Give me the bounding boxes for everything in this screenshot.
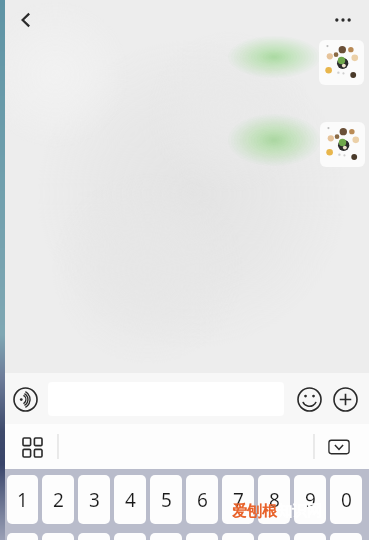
staticText: 6 <box>197 487 208 513</box>
button[interactable] <box>222 533 254 540</box>
staticText: 知识网 <box>277 502 322 521</box>
staticText: 7 <box>233 487 244 513</box>
button[interactable]: Hide keyboard <box>321 429 357 465</box>
button[interactable] <box>294 533 326 540</box>
staticText: 0 <box>341 487 352 513</box>
button[interactable] <box>7 533 38 540</box>
button[interactable] <box>228 36 320 78</box>
button[interactable]: 0 <box>330 475 362 524</box>
button[interactable]: Back <box>6 0 46 40</box>
button[interactable]: 4 <box>114 475 146 524</box>
staticText: 2 <box>53 487 64 513</box>
button[interactable] <box>186 533 218 540</box>
staticText: 8 <box>269 487 280 513</box>
staticText: 爱刨根 <box>232 502 277 521</box>
button[interactable]: Emoji <box>292 382 326 416</box>
button[interactable]: 9 <box>294 475 326 524</box>
button[interactable]: 2 <box>42 475 74 524</box>
button[interactable]: 3 <box>78 475 110 524</box>
button[interactable]: Sticker <box>320 122 365 167</box>
button[interactable]: More options <box>323 0 363 40</box>
button[interactable]: Keyboard panel <box>14 429 50 465</box>
staticText: 3 <box>89 487 100 513</box>
staticText: 4 <box>125 487 136 513</box>
button[interactable]: Sticker <box>319 40 364 85</box>
staticText: 5 <box>161 487 172 513</box>
button[interactable]: Voice input <box>8 382 42 416</box>
button[interactable]: 7 <box>222 475 254 524</box>
staticText: 9 <box>305 487 316 513</box>
button[interactable] <box>258 533 290 540</box>
button[interactable] <box>228 114 320 166</box>
button[interactable]: More <box>328 382 362 416</box>
button[interactable]: 5 <box>150 475 182 524</box>
staticText: 1 <box>17 487 28 513</box>
button[interactable]: 8 <box>258 475 290 524</box>
button[interactable] <box>330 533 362 540</box>
button[interactable] <box>42 533 74 540</box>
button[interactable] <box>114 533 146 540</box>
button[interactable]: 6 <box>186 475 218 524</box>
button[interactable]: 1 <box>7 475 38 524</box>
button[interactable] <box>78 533 110 540</box>
button[interactable] <box>150 533 182 540</box>
